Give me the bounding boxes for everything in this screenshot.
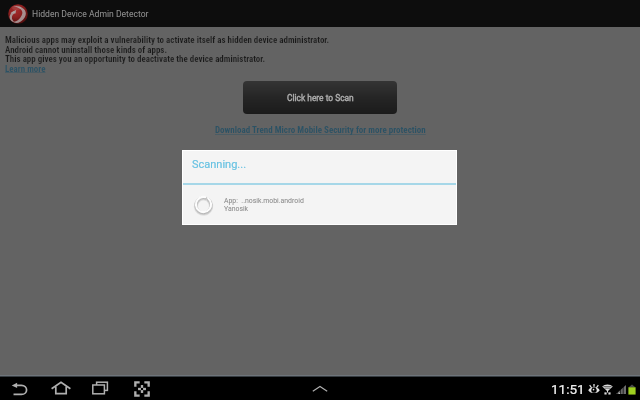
staticText: 11:51	[551, 381, 585, 397]
staticText: Learn more	[5, 64, 46, 74]
staticText: Yanosik	[224, 205, 249, 213]
staticText: Scanning...	[192, 158, 247, 171]
button[interactable]: Screen zoom	[133, 380, 151, 398]
button[interactable]: Recent apps	[92, 379, 112, 399]
button[interactable]: Show notifications	[311, 380, 329, 398]
staticText: Malicious apps may exploit a vulnerabili…	[5, 35, 330, 45]
button[interactable]: Home	[51, 379, 71, 399]
staticText: Click here to Scan	[287, 93, 354, 103]
staticText: Hidden Device Admin Detector	[32, 9, 149, 19]
button[interactable]: Learn more	[5, 64, 46, 74]
button[interactable]: Back	[11, 380, 29, 398]
staticText: This app gives you an opportunity to dea…	[5, 54, 266, 64]
staticText: Download Trend Micro Mobile Security for…	[215, 125, 426, 136]
button[interactable]: Download Trend Micro Mobile Security for…	[215, 125, 426, 136]
staticText: Android cannot uninstall those kinds of …	[5, 45, 168, 55]
button[interactable]: Click here to Scan	[243, 81, 397, 114]
staticText: App: ..nosik.mobi.android	[224, 197, 304, 205]
